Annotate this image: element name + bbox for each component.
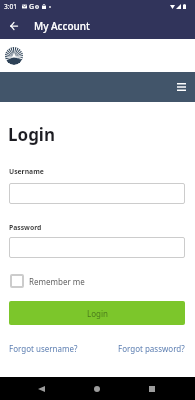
button[interactable] xyxy=(9,183,185,204)
button[interactable] xyxy=(9,237,185,258)
button[interactable]: Home xyxy=(86,378,108,400)
button[interactable]: Menu xyxy=(173,79,189,95)
staticText: Remember me xyxy=(29,276,85,287)
staticText: Login xyxy=(87,308,108,319)
staticText: Password xyxy=(9,223,42,232)
staticText: 3:01 xyxy=(4,2,17,11)
staticText: Username xyxy=(9,167,44,176)
button[interactable]: Login xyxy=(9,301,185,325)
button[interactable]: Back xyxy=(6,18,22,34)
button[interactable]: Recents xyxy=(141,378,163,400)
staticText: Login xyxy=(8,123,56,146)
staticText: G xyxy=(29,2,35,12)
button[interactable]: Remember me xyxy=(10,274,85,288)
button[interactable]: Back xyxy=(30,378,52,400)
button[interactable]: Forgot password? xyxy=(118,343,185,354)
staticText: My Account xyxy=(34,19,90,33)
button[interactable]: Forgot username? xyxy=(9,343,78,354)
